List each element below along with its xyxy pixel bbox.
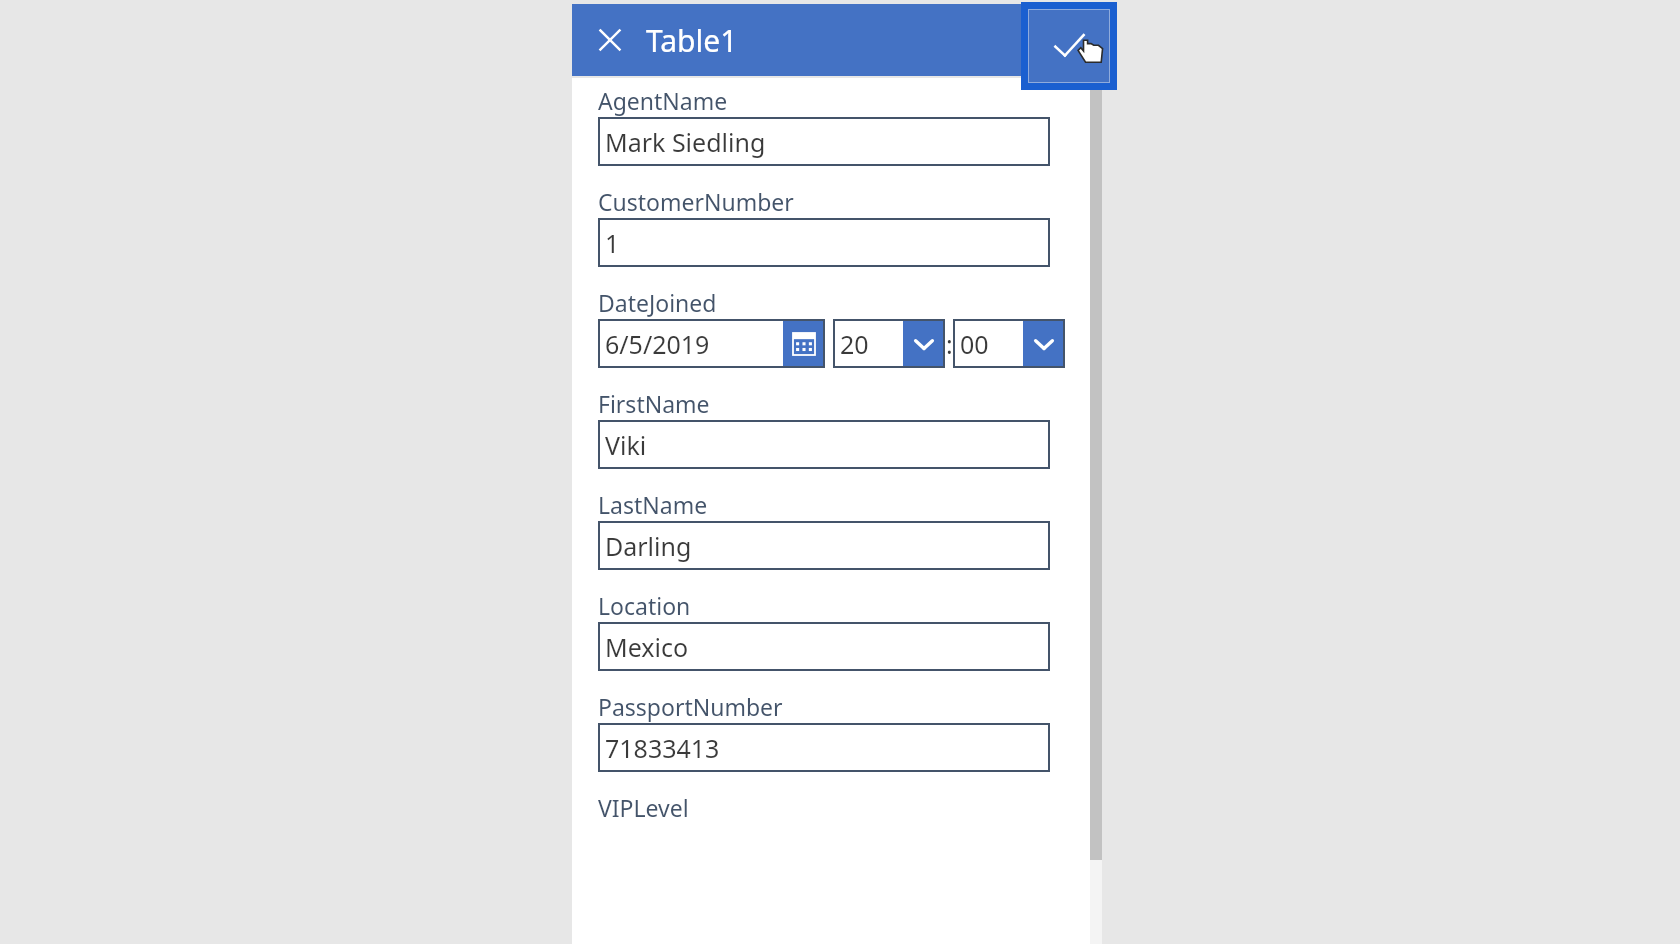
staticText: 00 <box>960 327 989 361</box>
staticText: 20 <box>840 327 869 361</box>
button[interactable]: Viki <box>598 420 1050 469</box>
button[interactable]: 6/5/2019 <box>598 319 825 368</box>
staticText: AgentName <box>598 85 728 116</box>
staticText: PassportNumber <box>598 691 783 722</box>
staticText: DateJoined <box>598 287 717 318</box>
staticText: Table1 <box>646 20 738 61</box>
staticText: Location <box>598 590 691 621</box>
button[interactable]: 00 <box>953 319 1065 368</box>
button[interactable]: Darling <box>598 521 1050 570</box>
button[interactable]: 20 <box>833 319 945 368</box>
staticText: Darling <box>605 529 692 563</box>
staticText: 1 <box>605 226 620 260</box>
button[interactable]: Save <box>1028 9 1110 83</box>
button[interactable]: Mark Siedling <box>598 117 1050 166</box>
staticText: : <box>946 327 953 361</box>
button[interactable]: 71833413 <box>598 723 1050 772</box>
button[interactable]: 1 <box>598 218 1050 267</box>
staticText: LastName <box>598 489 708 520</box>
button[interactable]: Open list <box>1023 319 1065 368</box>
staticText: VIPLevel <box>598 792 689 823</box>
staticText: FirstName <box>598 388 710 419</box>
staticText: CustomerNumber <box>598 186 794 217</box>
button[interactable]: Close <box>586 16 634 64</box>
button[interactable]: Pick date <box>783 319 825 368</box>
staticText: Mexico <box>605 630 689 664</box>
button[interactable]: Mexico <box>598 622 1050 671</box>
staticText: Viki <box>605 428 647 462</box>
staticText: 71833413 <box>605 731 720 765</box>
staticText: 6/5/2019 <box>605 327 710 361</box>
staticText: Mark Siedling <box>605 125 766 159</box>
button[interactable]: Open list <box>903 319 945 368</box>
